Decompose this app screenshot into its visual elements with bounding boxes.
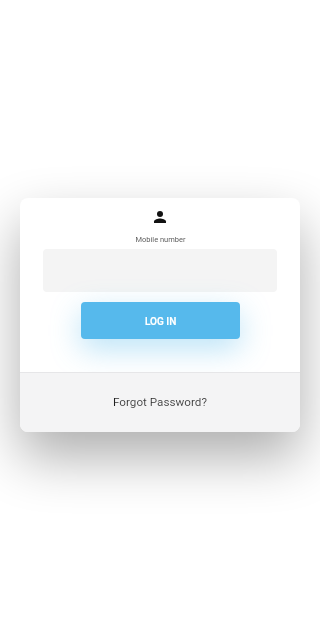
- other: Account: [151, 208, 169, 226]
- staticText: LOG IN: [145, 316, 177, 328]
- staticText: Mobile number: [135, 235, 186, 244]
- staticText: Forgot Password?: [113, 395, 207, 409]
- button[interactable]: Forgot Password?: [20, 373, 300, 432]
- button[interactable]: LOG IN: [81, 302, 240, 339]
